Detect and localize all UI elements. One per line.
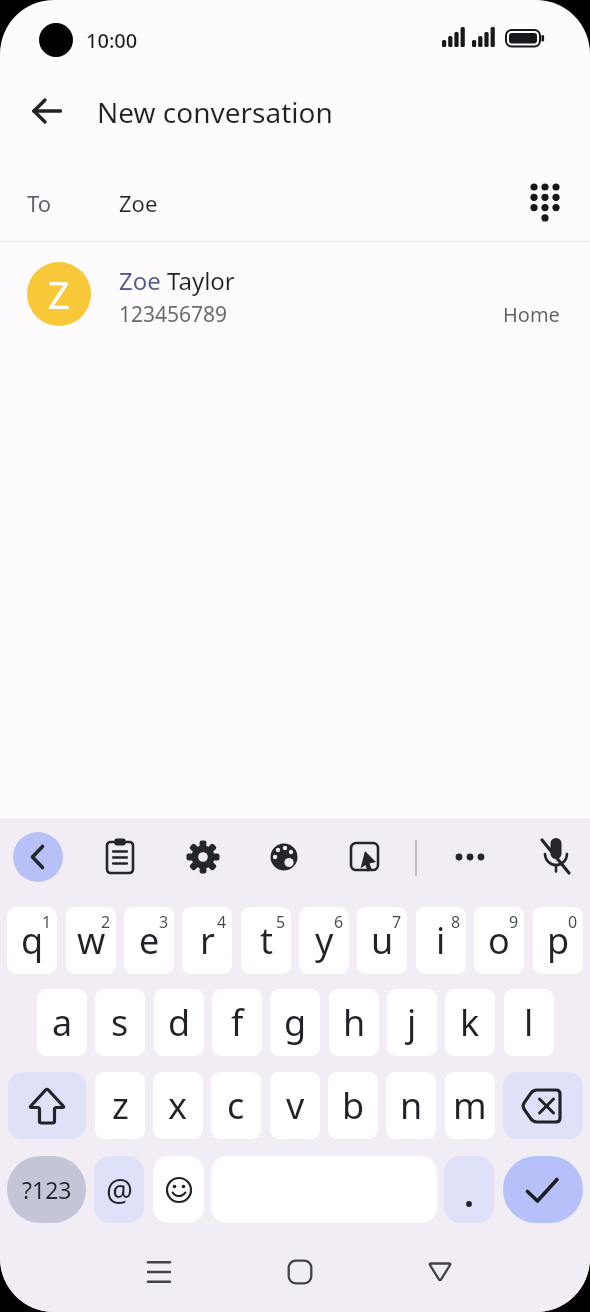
- button[interactable]: d: [154, 989, 204, 1056]
- button[interactable]: [179, 833, 227, 881]
- staticText: f: [231, 998, 244, 1047]
- staticText: a: [52, 998, 73, 1047]
- button[interactable]: [503, 1072, 583, 1139]
- staticText: e: [139, 916, 160, 965]
- button[interactable]: [96, 833, 144, 881]
- button[interactable]: n: [386, 1072, 436, 1139]
- button[interactable]: a: [37, 989, 87, 1056]
- button[interactable]: [8, 1072, 86, 1139]
- button[interactable]: [416, 1248, 464, 1296]
- button[interactable]: u: [357, 907, 407, 974]
- button[interactable]: [260, 833, 308, 881]
- button[interactable]: [13, 832, 63, 882]
- staticText: To: [27, 188, 52, 218]
- button[interactable]: q: [7, 907, 57, 974]
- button[interactable]: [153, 1156, 204, 1223]
- button[interactable]: t: [241, 907, 291, 974]
- button[interactable]: h: [329, 989, 379, 1056]
- staticText: n: [400, 1081, 423, 1130]
- button[interactable]: o: [474, 907, 524, 974]
- button[interactable]: [341, 833, 389, 881]
- staticText: d: [168, 998, 191, 1047]
- staticText: t: [260, 916, 273, 965]
- button[interactable]: [0, 246, 590, 342]
- button[interactable]: [446, 833, 494, 881]
- staticText: h: [343, 998, 366, 1047]
- staticText: u: [371, 916, 394, 965]
- staticText: s: [111, 998, 129, 1047]
- staticText: 4: [217, 911, 227, 933]
- staticText: 7: [392, 911, 402, 933]
- button[interactable]: [23, 87, 71, 135]
- button[interactable]: y: [299, 907, 349, 974]
- button[interactable]: p: [533, 907, 583, 974]
- staticText: 9: [509, 911, 519, 933]
- staticText: x: [168, 1081, 188, 1130]
- staticText: z: [112, 1081, 129, 1130]
- staticText: l: [524, 998, 534, 1047]
- button[interactable]: z: [95, 1072, 145, 1139]
- button[interactable]: @: [94, 1156, 144, 1223]
- staticText: Z: [48, 268, 70, 320]
- button[interactable]: v: [270, 1072, 320, 1139]
- staticText: g: [284, 998, 307, 1047]
- button[interactable]: l: [504, 989, 554, 1056]
- staticText: Zoe Taylor: [119, 264, 235, 297]
- staticText: o: [488, 916, 510, 965]
- staticText: @: [106, 1169, 133, 1210]
- button[interactable]: s: [95, 989, 145, 1056]
- button[interactable]: [276, 1248, 324, 1296]
- button[interactable]: g: [270, 989, 320, 1056]
- button[interactable]: [521, 178, 569, 226]
- button[interactable]: b: [328, 1072, 378, 1139]
- button[interactable]: e: [124, 907, 174, 974]
- staticText: r: [200, 916, 215, 965]
- staticText: p: [547, 916, 570, 965]
- staticText: y: [315, 916, 334, 965]
- button[interactable]: ?123: [7, 1156, 86, 1223]
- button[interactable]: w: [66, 907, 116, 974]
- staticText: 123456789: [119, 300, 228, 329]
- staticText: w: [77, 916, 106, 965]
- staticText: Zoe: [119, 188, 158, 218]
- staticText: ?123: [22, 1174, 72, 1205]
- staticText: i: [436, 916, 446, 965]
- button[interactable]: [135, 1248, 183, 1296]
- button[interactable]: [444, 1156, 494, 1223]
- staticText: b: [342, 1081, 365, 1130]
- staticText: j: [407, 998, 417, 1047]
- button[interactable]: x: [153, 1072, 203, 1139]
- button[interactable]: c: [211, 1072, 261, 1139]
- staticText: k: [460, 998, 480, 1047]
- staticText: m: [453, 1081, 487, 1130]
- button[interactable]: f: [212, 989, 262, 1056]
- button[interactable]: i: [416, 907, 466, 974]
- staticText: v: [286, 1081, 305, 1130]
- staticText: 6: [334, 911, 344, 933]
- button[interactable]: j: [387, 989, 437, 1056]
- staticText: Home: [503, 301, 560, 328]
- button[interactable]: m: [445, 1072, 495, 1139]
- button[interactable]: k: [445, 989, 495, 1056]
- staticText: 1: [42, 911, 52, 933]
- staticText: 0: [568, 911, 578, 933]
- staticText: 2: [101, 911, 111, 933]
- staticText: q: [21, 916, 44, 965]
- staticText: 5: [276, 911, 286, 933]
- staticText: c: [227, 1081, 245, 1130]
- button[interactable]: r: [182, 907, 232, 974]
- button[interactable]: [503, 1156, 583, 1223]
- staticText: 10:00: [86, 27, 138, 54]
- staticText: 8: [451, 911, 461, 933]
- staticText: New conversation: [97, 93, 333, 131]
- button[interactable]: [532, 833, 580, 881]
- staticText: 3: [159, 911, 169, 933]
